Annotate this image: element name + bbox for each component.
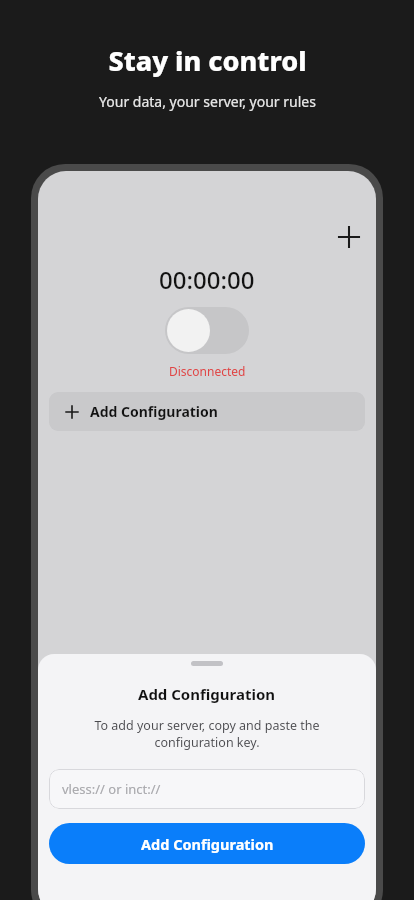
staticText: Stay in control [108,42,307,79]
button[interactable]: Add [329,217,369,257]
button[interactable]: vless:// or inct:// [49,769,365,809]
button[interactable]: Connect toggle [165,307,249,354]
staticText: vless:// or inct:// [62,780,161,798]
staticText: To add your server, copy and paste the c… [94,717,320,751]
staticText: Your data, your server, your rules [99,92,316,111]
button[interactable]: Add Configuration [49,392,365,431]
staticText: Add Configuration [141,834,274,854]
staticText: Add Configuration [138,684,276,704]
staticText: Disconnected [169,363,246,379]
button[interactable]: Add Configuration [49,823,365,864]
staticText: 00:00:00 [159,263,255,296]
staticText: Add Configuration [90,402,218,421]
